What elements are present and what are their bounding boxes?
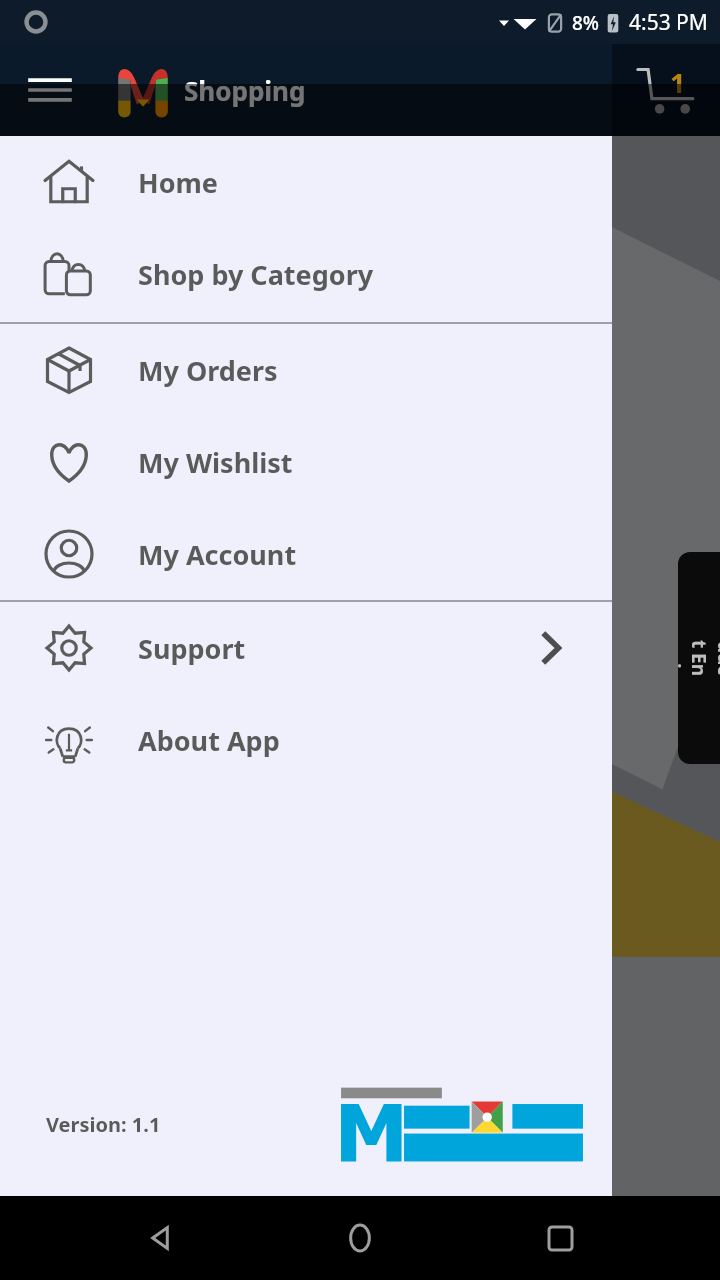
button[interactable]: Open navigation drawer	[22, 62, 78, 118]
staticText: My Account	[138, 536, 297, 573]
staticText: Home	[138, 164, 218, 201]
button[interactable]: My Account	[0, 508, 612, 600]
staticText: 8%	[572, 10, 600, 36]
button[interactable]: About App	[0, 694, 612, 786]
button[interactable]: Home	[0, 136, 612, 228]
button[interactable]: Home	[328, 1206, 392, 1270]
staticText: Product Enquiry	[678, 637, 720, 679]
button[interactable]: Shopping cart, 1 item	[612, 44, 720, 136]
button[interactable]: Support	[0, 602, 612, 694]
button[interactable]: My Wishlist	[0, 416, 612, 508]
staticText: Shopping	[184, 73, 306, 108]
staticText: Support	[138, 630, 246, 667]
button[interactable]: Shop by Category	[0, 228, 612, 320]
staticText: 1	[670, 64, 686, 101]
button[interactable]: Product Enquiry	[678, 552, 720, 764]
staticText: 4:53 PM	[629, 8, 708, 37]
staticText: My Wishlist	[138, 444, 293, 481]
staticText: My Orders	[138, 352, 278, 389]
staticText: About App	[138, 722, 280, 759]
staticText: Shop by Category	[138, 256, 374, 293]
button[interactable]: Recent apps	[528, 1206, 592, 1270]
button[interactable]: Back	[128, 1206, 192, 1270]
staticText: Version: 1.1	[46, 1111, 161, 1138]
button[interactable]: My Orders	[0, 324, 612, 416]
